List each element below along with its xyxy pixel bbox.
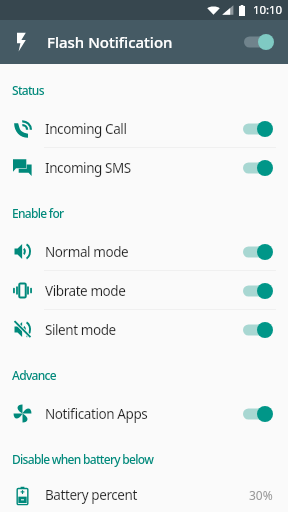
button[interactable]: Silent mode: [0, 310, 288, 349]
button[interactable]: [243, 320, 273, 340]
button[interactable]: Notification Apps: [0, 394, 288, 433]
staticText: Advance: [12, 367, 56, 383]
staticText: Incoming Call: [45, 120, 127, 138]
staticText: Battery percent: [45, 486, 137, 504]
staticText: Normal mode: [45, 243, 129, 261]
button[interactable]: [243, 404, 273, 424]
staticText: Incoming SMS: [45, 159, 131, 177]
staticText: 10:10: [253, 2, 282, 18]
button[interactable]: Battery percent: [0, 478, 288, 512]
button[interactable]: [243, 119, 273, 139]
button[interactable]: Normal mode: [0, 232, 288, 271]
staticText: Notification Apps: [45, 405, 148, 423]
button[interactable]: [243, 158, 273, 178]
button[interactable]: [243, 242, 273, 262]
staticText: Enable for: [12, 205, 64, 221]
staticText: Vibrate mode: [45, 282, 126, 300]
staticText: Status: [12, 82, 44, 98]
button[interactable]: Toggle flash notification: [244, 32, 274, 52]
staticText: Disable when battery below: [12, 451, 154, 467]
button[interactable]: Incoming SMS: [0, 148, 288, 187]
button[interactable]: Incoming Call: [0, 109, 288, 148]
other: Flash: [11, 32, 31, 52]
staticText: 30%: [249, 487, 273, 503]
button[interactable]: [243, 281, 273, 301]
button[interactable]: Vibrate mode: [0, 271, 288, 310]
staticText: Flash Notification: [47, 32, 173, 52]
staticText: Silent mode: [45, 321, 116, 339]
